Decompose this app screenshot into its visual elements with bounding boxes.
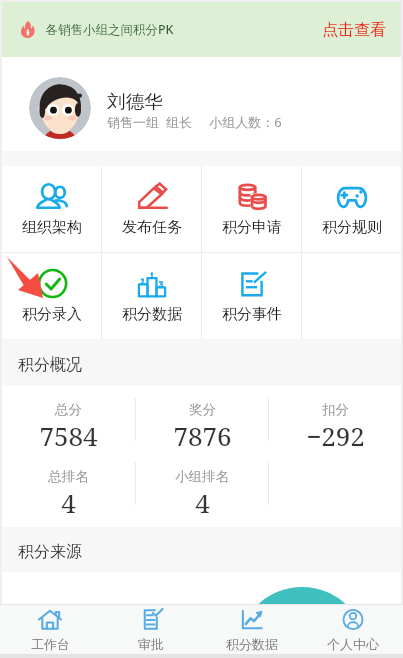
button[interactable]: 积分数据: [102, 253, 201, 339]
button[interactable]: 发布任务: [102, 166, 201, 252]
staticText: 总分: [55, 401, 82, 418]
staticText: 积分申请: [222, 218, 282, 237]
staticText: 4: [195, 485, 210, 520]
button[interactable]: 扣分: [269, 386, 401, 458]
staticText: 积分规则: [322, 218, 382, 237]
staticText: 小组排名: [175, 468, 229, 485]
button[interactable]: 总分: [2, 386, 135, 458]
staticText: 点击查看: [322, 20, 386, 40]
button[interactable]: 积分规则: [302, 166, 401, 252]
staticText: 个人中心: [327, 636, 379, 652]
staticText: 扣分: [322, 401, 349, 418]
button[interactable]: 小组排名: [136, 458, 268, 520]
staticText: 积分概况: [18, 355, 82, 375]
button[interactable]: 组织架构: [2, 166, 101, 252]
staticText: 7584: [39, 418, 98, 453]
staticText: 7876: [173, 418, 232, 453]
staticText: 积分数据: [226, 636, 278, 652]
button[interactable]: 刘德华: [2, 57, 401, 151]
staticText: 总排名: [48, 468, 89, 485]
staticText: 发布任务: [122, 218, 182, 237]
staticText: 4: [61, 485, 76, 520]
staticText: 积分录入: [22, 305, 82, 324]
staticText: 积分来源: [18, 542, 82, 562]
staticText: 奖分: [189, 401, 216, 418]
button[interactable]: 总排名: [2, 458, 135, 520]
staticText: 刘德华: [107, 90, 163, 113]
button[interactable]: 积分事件: [202, 253, 301, 339]
staticText: 审批: [138, 636, 164, 652]
staticText: 小组人数：6: [209, 113, 282, 131]
button[interactable]: 积分申请: [202, 166, 301, 252]
button[interactable]: 奖分: [136, 386, 268, 458]
staticText: 积分事件: [222, 305, 282, 324]
staticText: 组织架构: [22, 218, 82, 237]
button[interactable]: 个人中心: [302, 604, 403, 654]
staticText: 工作台: [31, 636, 70, 652]
button[interactable]: 各销售小组之间积分PK: [2, 2, 401, 57]
button[interactable]: 积分录入: [2, 253, 101, 339]
button[interactable]: 积分数据: [201, 604, 302, 654]
button[interactable]: 工作台: [0, 604, 100, 654]
staticText: 销售一组 组长: [107, 113, 192, 131]
staticText: −292: [306, 418, 365, 453]
button[interactable]: 审批: [100, 604, 201, 654]
staticText: 积分数据: [122, 305, 182, 324]
staticText: 各销售小组之间积分PK: [45, 21, 174, 38]
